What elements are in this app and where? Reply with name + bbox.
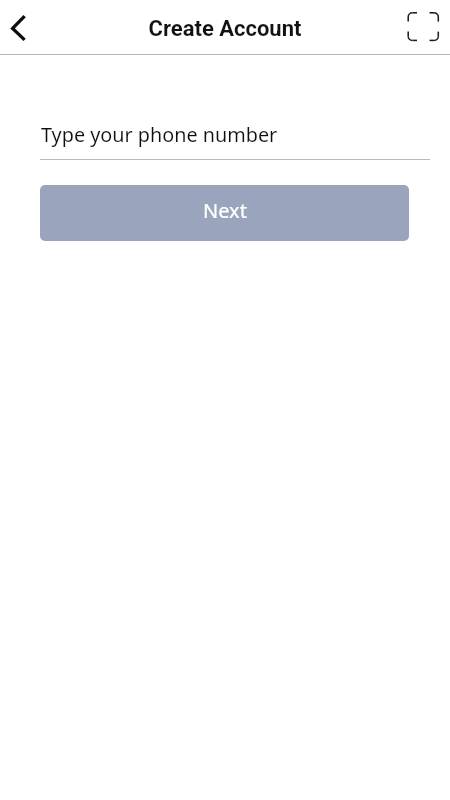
button[interactable]: Scan code	[401, 5, 446, 50]
staticText: Create Account	[0, 16, 450, 42]
button[interactable]: Type your phone number	[40, 121, 430, 163]
button[interactable]: Back	[0, 0, 46, 46]
staticText: Next	[203, 197, 247, 224]
button[interactable]: Next	[40, 185, 409, 241]
staticText: Type your phone number	[41, 121, 278, 148]
